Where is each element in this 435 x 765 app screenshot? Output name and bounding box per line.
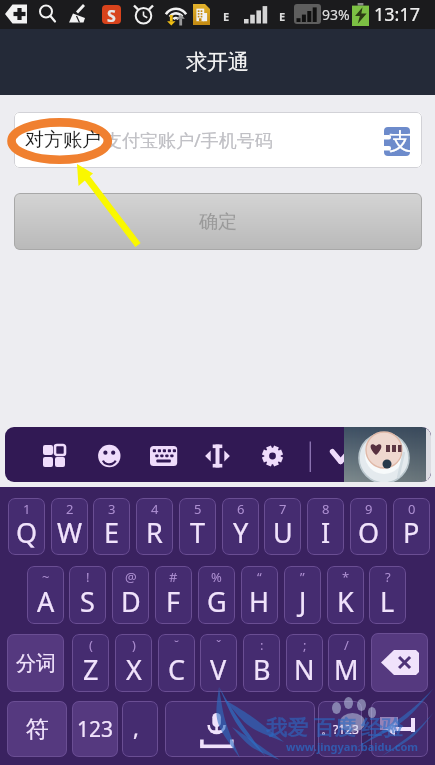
- staticText: 7: [279, 500, 287, 518]
- staticText: 确定: [199, 210, 237, 234]
- staticText: D: [121, 583, 141, 620]
- staticText: ,: [133, 712, 139, 742]
- button[interactable]: *: [327, 566, 364, 624]
- staticText: Y: [233, 514, 249, 551]
- staticText: :: [260, 636, 264, 654]
- staticText: 符: [26, 715, 49, 744]
- staticText: C: [168, 651, 186, 688]
- staticText: ”: [300, 568, 305, 586]
- staticText: X: [126, 651, 142, 688]
- staticText: ~: [42, 568, 50, 586]
- staticText: 1: [23, 500, 31, 518]
- button[interactable]: :: [243, 634, 280, 692]
- button[interactable]: ,: [122, 701, 158, 757]
- button[interactable]: 3: [93, 498, 130, 555]
- staticText: 分词: [16, 651, 56, 676]
- staticText: H: [249, 583, 270, 620]
- button[interactable]: 9: [350, 498, 387, 555]
- button[interactable]: (: [72, 634, 109, 692]
- staticText: 对方账户: [25, 128, 101, 152]
- staticText: Z: [83, 651, 99, 688]
- button[interactable]: 7: [264, 498, 301, 555]
- staticText: E: [279, 9, 286, 24]
- staticText: 8: [322, 500, 330, 518]
- staticText: ): [132, 636, 136, 654]
- staticText: J: [299, 583, 307, 620]
- staticText: U: [273, 514, 293, 551]
- button[interactable]: ~: [27, 566, 64, 624]
- staticText: B: [253, 651, 271, 688]
- button[interactable]: 5: [179, 498, 216, 555]
- staticText: M: [334, 651, 359, 688]
- button[interactable]: “: [241, 566, 278, 624]
- staticText: (: [89, 636, 93, 654]
- button[interactable]: ˘: [158, 634, 195, 692]
- staticText: *: [342, 568, 350, 586]
- staticText: V: [210, 651, 227, 688]
- button[interactable]: Backspace: [371, 633, 428, 692]
- staticText: S: [80, 583, 95, 620]
- staticText: ˇ: [216, 636, 222, 654]
- button[interactable]: 2: [51, 498, 88, 555]
- button[interactable]: ˇ: [200, 634, 237, 692]
- button[interactable]: ”: [284, 566, 321, 624]
- button[interactable]: 。?123: [318, 701, 362, 757]
- staticText: !: [86, 568, 90, 586]
- button[interactable]: @: [112, 566, 149, 624]
- button[interactable]: #: [155, 566, 192, 624]
- staticText: 。?123: [321, 721, 359, 737]
- staticText: ?: [385, 568, 391, 586]
- staticText: 支付宝账户/手机号码: [104, 128, 273, 153]
- staticText: O: [358, 514, 380, 551]
- button[interactable]: Enter: [371, 701, 428, 757]
- staticText: 123: [77, 715, 114, 744]
- staticText: E: [223, 9, 230, 24]
- staticText: 9: [365, 500, 373, 518]
- staticText: ;: [303, 636, 307, 654]
- staticText: 4: [151, 500, 159, 518]
- button[interactable]: Space: [165, 701, 315, 757]
- button[interactable]: 支付宝账户/手机号码: [14, 112, 422, 168]
- staticText: #: [169, 568, 178, 586]
- staticText: www.jingyan.baidu.com: [286, 739, 418, 754]
- staticText: G: [207, 583, 227, 620]
- staticText: E: [104, 514, 120, 551]
- staticText: 我爱 百度 经验: [266, 713, 403, 742]
- button[interactable]: Select contact: [384, 127, 410, 156]
- button[interactable]: 0: [393, 498, 430, 555]
- button[interactable]: ): [115, 634, 152, 692]
- button[interactable]: %: [198, 566, 235, 624]
- button[interactable]: 6: [222, 498, 259, 555]
- staticText: N: [294, 651, 315, 688]
- button[interactable]: 8: [307, 498, 344, 555]
- button[interactable]: 123: [72, 701, 118, 757]
- button[interactable]: 分词: [7, 634, 64, 692]
- button[interactable]: ;: [286, 634, 323, 692]
- staticText: /: [344, 636, 349, 654]
- button[interactable]: 确定: [14, 193, 422, 250]
- staticText: %: [211, 568, 222, 586]
- other: SIM: [193, 4, 210, 25]
- staticText: F: [166, 583, 181, 620]
- staticText: “: [257, 568, 262, 586]
- staticText: 2: [66, 500, 74, 518]
- staticText: R: [146, 514, 163, 551]
- button[interactable]: Theme: [344, 427, 431, 482]
- button[interactable]: 4: [136, 498, 173, 555]
- staticText: 求开通: [186, 49, 249, 75]
- staticText: K: [337, 583, 354, 620]
- staticText: L: [380, 583, 395, 620]
- staticText: 支: [389, 127, 410, 156]
- button[interactable]: 1: [8, 498, 45, 555]
- staticText: I: [321, 514, 331, 551]
- button[interactable]: !: [69, 566, 106, 624]
- button[interactable]: /: [328, 634, 365, 692]
- staticText: 3: [108, 500, 116, 518]
- button[interactable]: ?: [369, 566, 406, 624]
- staticText: P: [403, 514, 420, 551]
- staticText: 13:17: [374, 2, 421, 27]
- staticText: @: [125, 568, 137, 586]
- staticText: T: [190, 514, 206, 551]
- button[interactable]: 符: [7, 701, 67, 757]
- staticText: 5: [194, 500, 202, 518]
